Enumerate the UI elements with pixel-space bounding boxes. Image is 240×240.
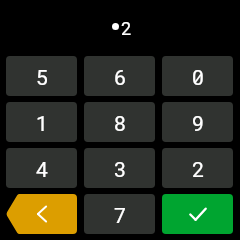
button[interactable]: Confirm — [162, 194, 233, 234]
staticText: 5 — [36, 66, 48, 91]
staticText: 1 — [36, 112, 48, 137]
button[interactable]: 0 — [162, 56, 233, 96]
staticText: 4 — [36, 158, 48, 183]
button[interactable]: 6 — [84, 56, 155, 96]
button[interactable]: 1 — [6, 102, 77, 142]
button[interactable]: 9 — [162, 102, 233, 142]
button[interactable]: 8 — [84, 102, 155, 142]
staticText: 2 — [192, 158, 204, 183]
button[interactable]: Back — [6, 194, 77, 234]
staticText: 0 — [192, 66, 204, 91]
button[interactable]: 7 — [84, 194, 155, 234]
staticText: 3 — [114, 158, 126, 183]
staticText: 6 — [114, 66, 126, 91]
button[interactable]: 2 — [162, 148, 233, 188]
button[interactable]: 5 — [6, 56, 77, 96]
button[interactable]: 4 — [6, 148, 77, 188]
staticText: 2 — [121, 18, 132, 39]
staticText: 9 — [192, 112, 204, 137]
staticText: 7 — [114, 204, 126, 229]
staticText: 8 — [114, 112, 126, 137]
button[interactable]: 3 — [84, 148, 155, 188]
